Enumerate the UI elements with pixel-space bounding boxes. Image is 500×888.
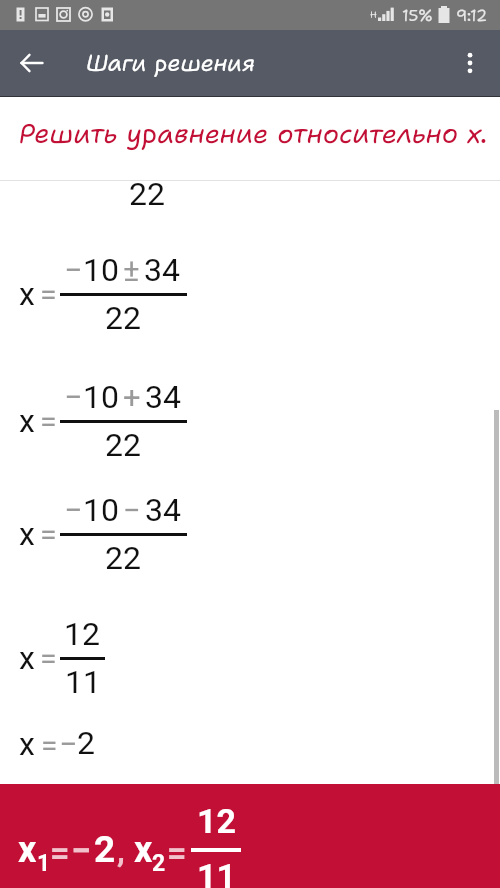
staticText: 15% xyxy=(402,5,434,26)
button[interactable]: Back xyxy=(8,39,56,87)
staticText: = xyxy=(41,728,58,763)
staticText: ± xyxy=(123,252,140,288)
staticText: x xyxy=(19,725,35,763)
staticText: 34 xyxy=(145,491,181,529)
staticText: 34 xyxy=(145,378,181,416)
staticText: + xyxy=(123,379,141,415)
staticText: − xyxy=(64,378,83,416)
staticText: 1 xyxy=(37,850,51,877)
staticText: x xyxy=(18,829,37,871)
staticText: 22 xyxy=(105,539,141,577)
staticText: 11 xyxy=(65,663,101,701)
staticText: 9:12 xyxy=(456,5,488,26)
staticText: 12 xyxy=(197,801,237,841)
staticText: Шаги решения xyxy=(86,48,255,79)
staticText: − xyxy=(64,251,83,289)
staticText: 2 xyxy=(152,850,166,877)
staticText: = xyxy=(40,277,57,313)
staticText: 34 xyxy=(144,251,180,289)
staticText: = xyxy=(40,517,57,553)
staticText: = xyxy=(167,832,187,872)
staticText: 11 xyxy=(197,856,237,888)
staticText: − xyxy=(64,491,83,529)
staticText: 22 xyxy=(105,426,141,464)
button[interactable]: x xyxy=(0,784,500,888)
staticText: 2 xyxy=(94,828,116,871)
staticText: x xyxy=(134,829,153,871)
staticText: x xyxy=(19,639,35,677)
staticText: 2 xyxy=(77,724,95,762)
staticText: , xyxy=(117,832,125,870)
staticText: − xyxy=(71,830,91,872)
staticText: = xyxy=(40,641,57,677)
staticText: 12 xyxy=(64,615,100,653)
staticText: = xyxy=(50,832,70,872)
staticText: 10 xyxy=(83,378,119,416)
staticText: − xyxy=(59,725,78,763)
staticText: x xyxy=(19,275,35,313)
staticText: 10 xyxy=(83,491,119,529)
staticText: 10 xyxy=(83,251,119,289)
staticText: x xyxy=(19,402,35,440)
staticText: 22 xyxy=(129,175,165,213)
staticText: Решить уравнение относительно x. xyxy=(19,115,489,151)
staticText: − xyxy=(123,492,141,528)
staticText: H xyxy=(370,9,377,21)
staticText: = xyxy=(40,404,57,440)
button[interactable]: More options xyxy=(446,39,494,87)
staticText: x xyxy=(19,515,35,553)
staticText: 22 xyxy=(105,299,141,337)
